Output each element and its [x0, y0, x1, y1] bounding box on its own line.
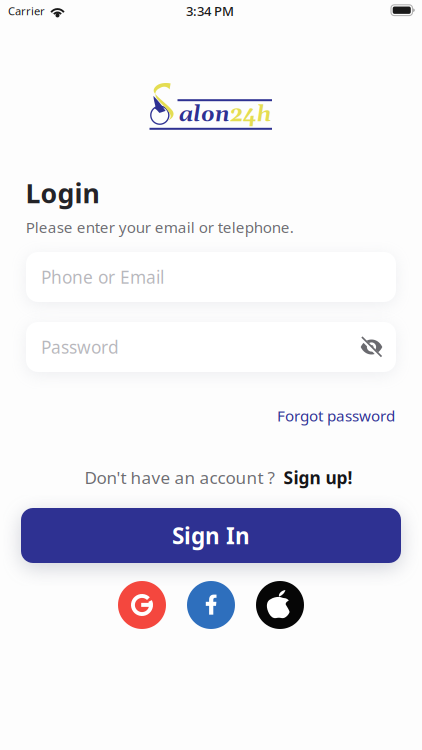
staticText: Phone or Email — [41, 265, 164, 289]
button[interactable]: Password — [26, 322, 396, 372]
button[interactable]: Phone or Email — [26, 252, 396, 302]
staticText: Carrier — [8, 3, 45, 19]
button[interactable]: Sign in with Google — [118, 581, 166, 629]
staticText: Login — [25, 175, 99, 211]
button[interactable]: Don't have an account ? — [84, 466, 352, 489]
staticText: 3:34 PM — [186, 2, 234, 20]
button[interactable]: Sign in with Apple — [256, 581, 304, 629]
button[interactable]: Sign In — [21, 508, 401, 563]
staticText: Please enter your email or telephone. — [26, 217, 294, 237]
staticText: 24h — [230, 101, 271, 129]
button[interactable]: Sign in with Facebook — [187, 581, 235, 629]
staticText: Sign up! — [283, 466, 352, 489]
staticText: Sign In — [172, 520, 250, 551]
staticText: Don't have an account ? — [84, 466, 274, 489]
button[interactable]: Forgot password — [277, 405, 395, 426]
staticText: alon — [179, 101, 230, 129]
staticText: Forgot password — [277, 405, 395, 426]
staticText: Password — [41, 335, 119, 359]
